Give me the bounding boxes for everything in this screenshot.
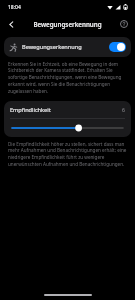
button[interactable]: Help — [116, 16, 132, 32]
button[interactable] — [109, 42, 126, 52]
staticText: Die Empfindlichkeit höher zu stellen, si… — [8, 141, 127, 168]
staticText: 6 — [122, 106, 125, 113]
staticText: Erkennen Sie in Echtzeit, ob eine Bewegu… — [8, 61, 127, 95]
staticText: Empfindlichkeit — [10, 106, 122, 114]
staticText: Bewegungserkennung — [22, 43, 109, 51]
staticText: Bewegungserkennung — [33, 20, 102, 28]
button[interactable]: Back — [3, 16, 19, 32]
button[interactable] — [4, 119, 131, 137]
staticText: 18:04 — [8, 4, 21, 11]
button[interactable]: Bewegungserkennung — [4, 37, 131, 57]
button[interactable]: Empfindlichkeit — [4, 101, 131, 118]
